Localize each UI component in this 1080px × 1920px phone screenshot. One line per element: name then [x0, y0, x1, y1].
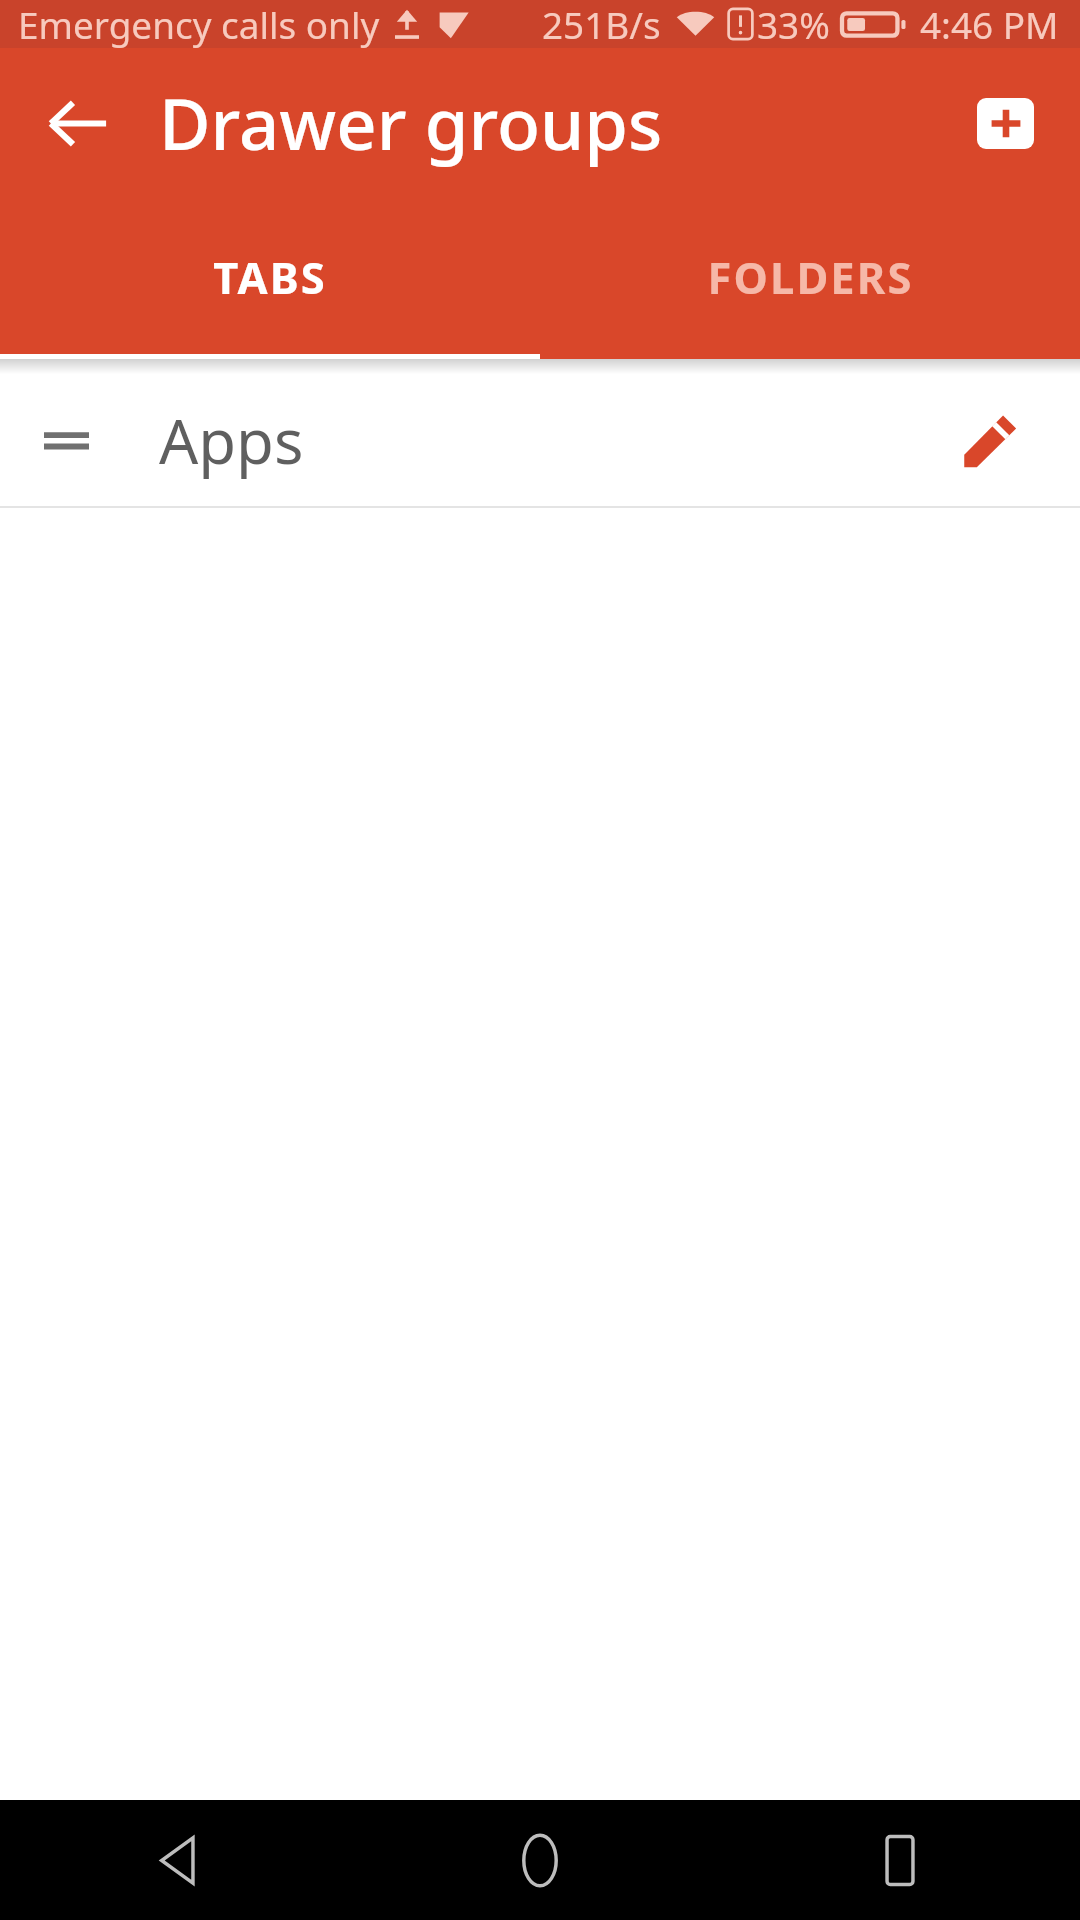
button[interactable]: FOLDERS: [540, 198, 1080, 354]
staticText: 4:46 PM: [920, 0, 1059, 48]
staticText: 251B/s: [542, 0, 661, 48]
button[interactable]: Back: [0, 1800, 360, 1920]
other: Drag handle: [27, 401, 105, 479]
button[interactable]: Add group: [957, 75, 1053, 171]
button[interactable]: Home: [360, 1800, 720, 1920]
staticText: Drawer groups: [159, 75, 663, 171]
button[interactable]: Drag handle: [0, 374, 1080, 506]
staticText: Apps: [159, 398, 304, 482]
button[interactable]: Navigate up: [18, 63, 138, 183]
staticText: Emergency calls only: [18, 0, 380, 48]
button[interactable]: Recent apps: [720, 1800, 1080, 1920]
button[interactable]: TABS: [0, 198, 540, 354]
button[interactable]: Edit: [939, 389, 1041, 491]
staticText: TABS: [213, 247, 327, 306]
staticText: FOLDERS: [707, 247, 914, 306]
staticText: 33%: [757, 0, 830, 48]
